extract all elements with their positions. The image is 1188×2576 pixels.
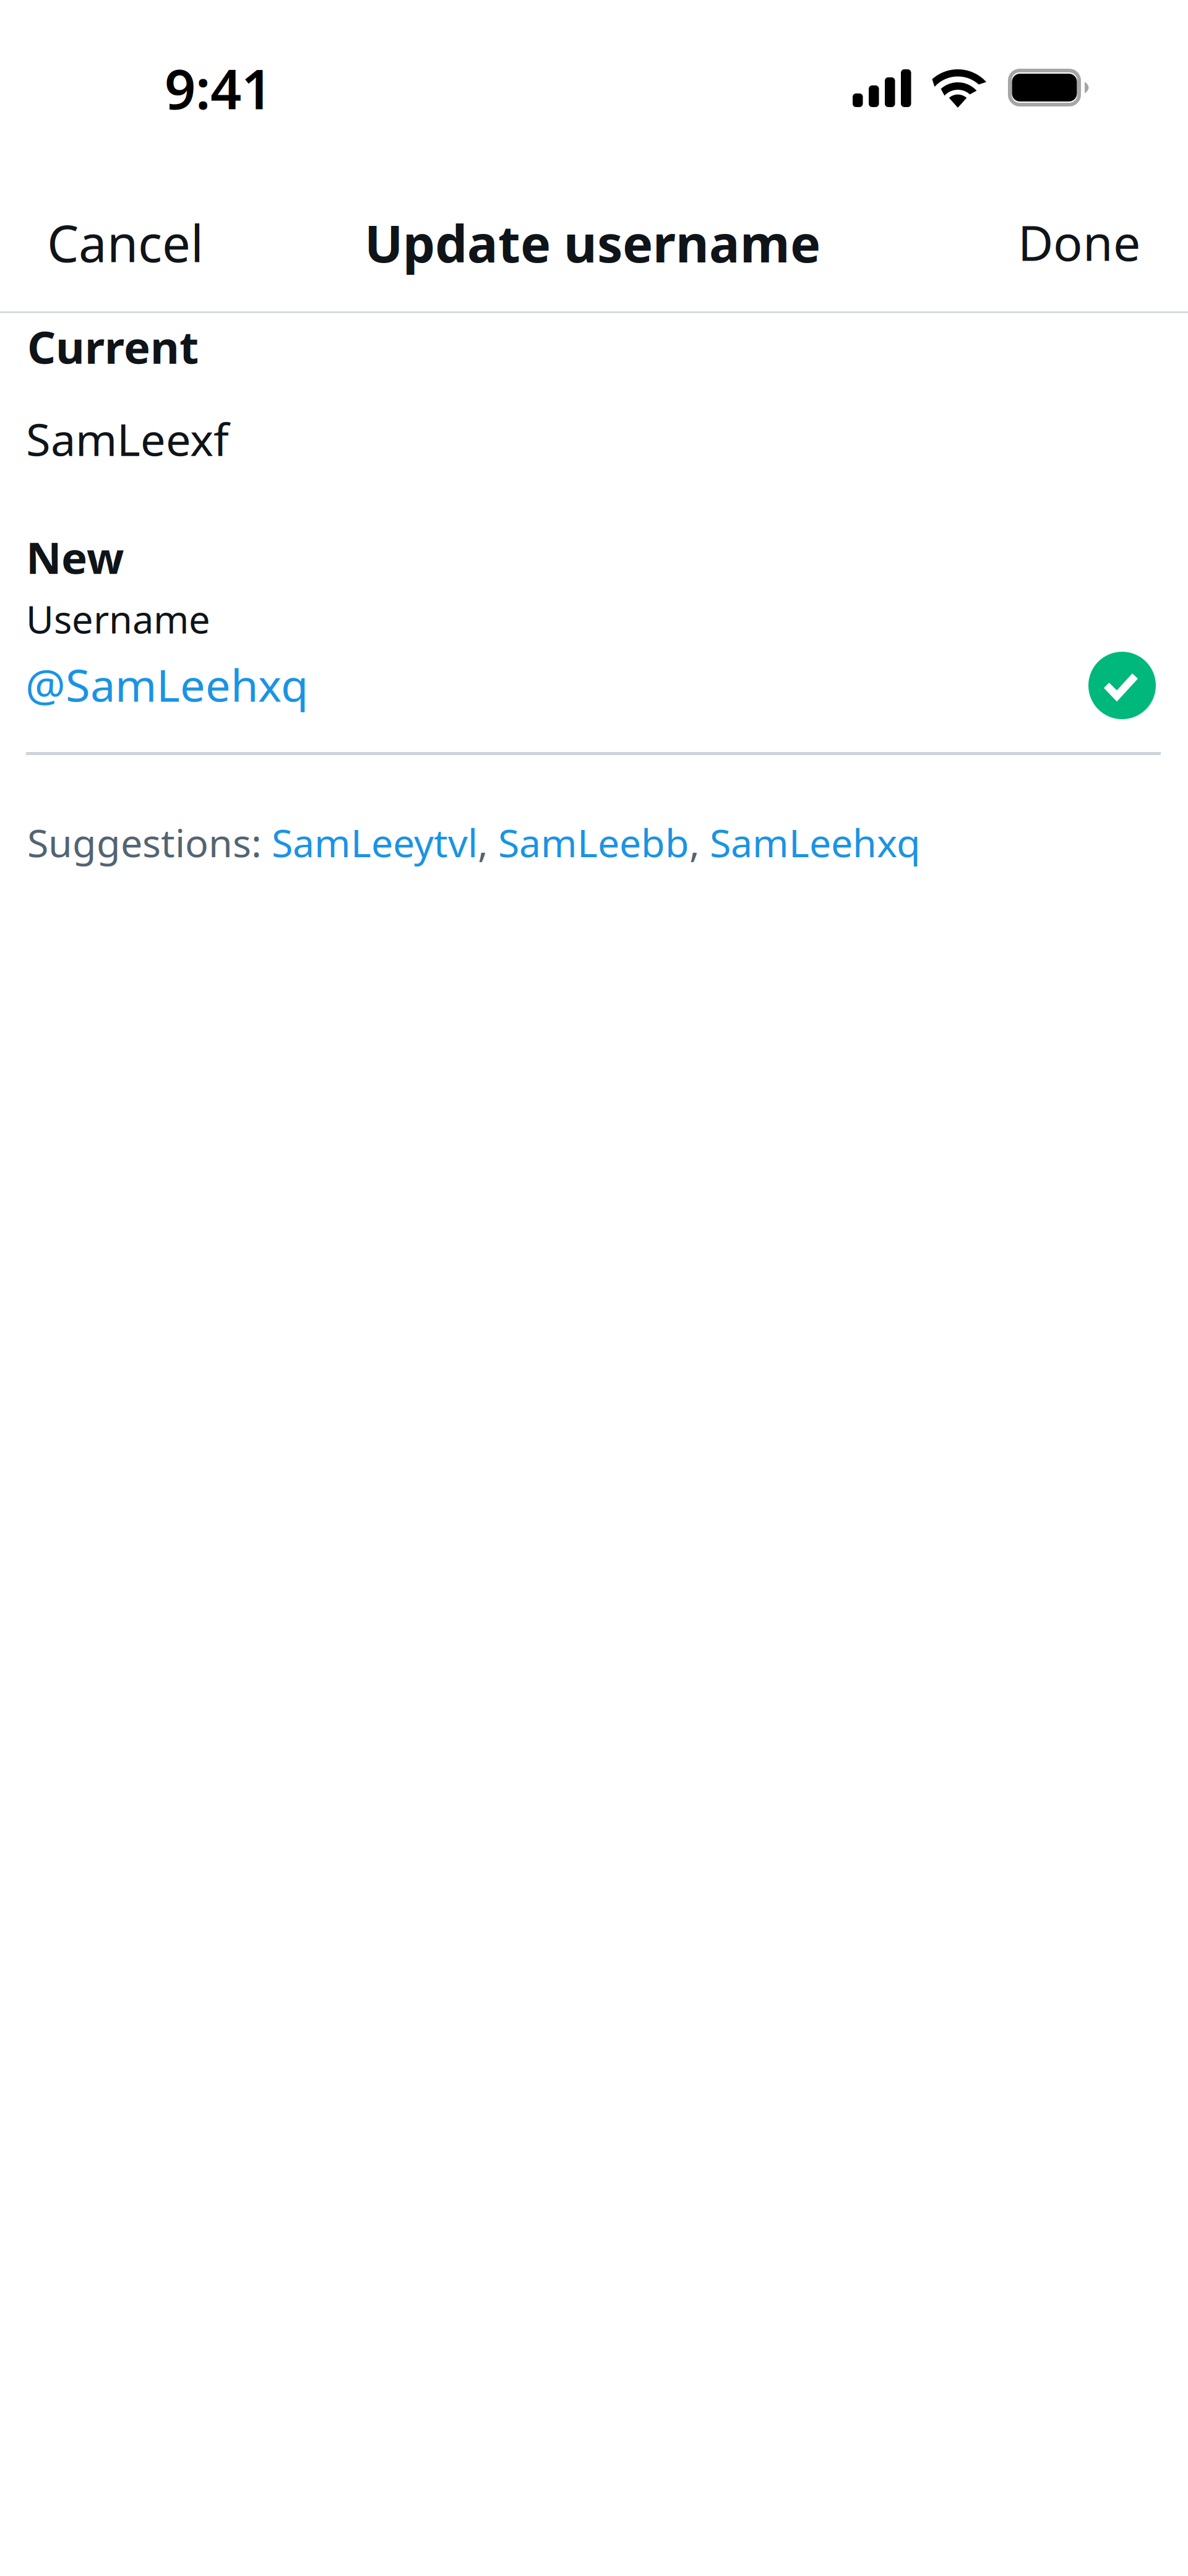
staticText: SamLeexf — [26, 409, 229, 468]
staticText: Done — [1018, 210, 1140, 274]
staticText: 9:41 — [165, 52, 272, 124]
button[interactable]: Username, @SamLeehxq, available — [26, 652, 1156, 752]
staticText: , — [689, 816, 710, 868]
staticText: Cancel — [47, 209, 204, 276]
button[interactable]: SamLeehxq — [710, 816, 921, 868]
button[interactable]: Done — [955, 196, 1140, 288]
staticText: SamLeeytvl — [272, 816, 478, 868]
staticText: Update username — [364, 209, 820, 277]
staticText: , — [478, 816, 498, 868]
button[interactable]: SamLeebb — [498, 816, 689, 868]
staticText: Current — [27, 317, 199, 376]
button[interactable]: SamLeeytvl — [272, 816, 478, 868]
staticText: Username — [26, 594, 210, 644]
button[interactable]: Cancel — [47, 196, 233, 289]
staticText: SamLeehxq — [710, 816, 921, 868]
staticText: SamLeebb — [498, 816, 689, 868]
staticText: Suggestions: — [27, 816, 272, 868]
staticText: New — [26, 528, 124, 586]
staticText: @SamLeehxq — [25, 655, 308, 714]
